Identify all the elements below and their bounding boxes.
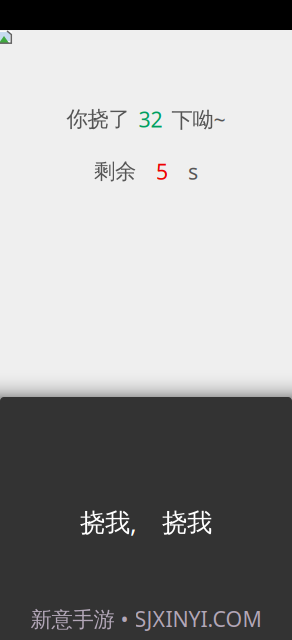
staticText: 5 [156, 157, 168, 186]
staticText: 新意手游 • SJXINYI.COM [30, 605, 261, 633]
staticText: s [188, 157, 198, 186]
staticText: 剩余 [94, 158, 136, 185]
button[interactable]: 挠我 [0, 397, 292, 640]
staticText: 挠我 [162, 507, 212, 538]
staticText: , [130, 506, 137, 540]
staticText: 挠我 [80, 507, 130, 538]
staticText: 你挠了 [66, 106, 129, 132]
staticText: 下呦~ [171, 105, 225, 133]
staticText: 32 [138, 105, 162, 133]
